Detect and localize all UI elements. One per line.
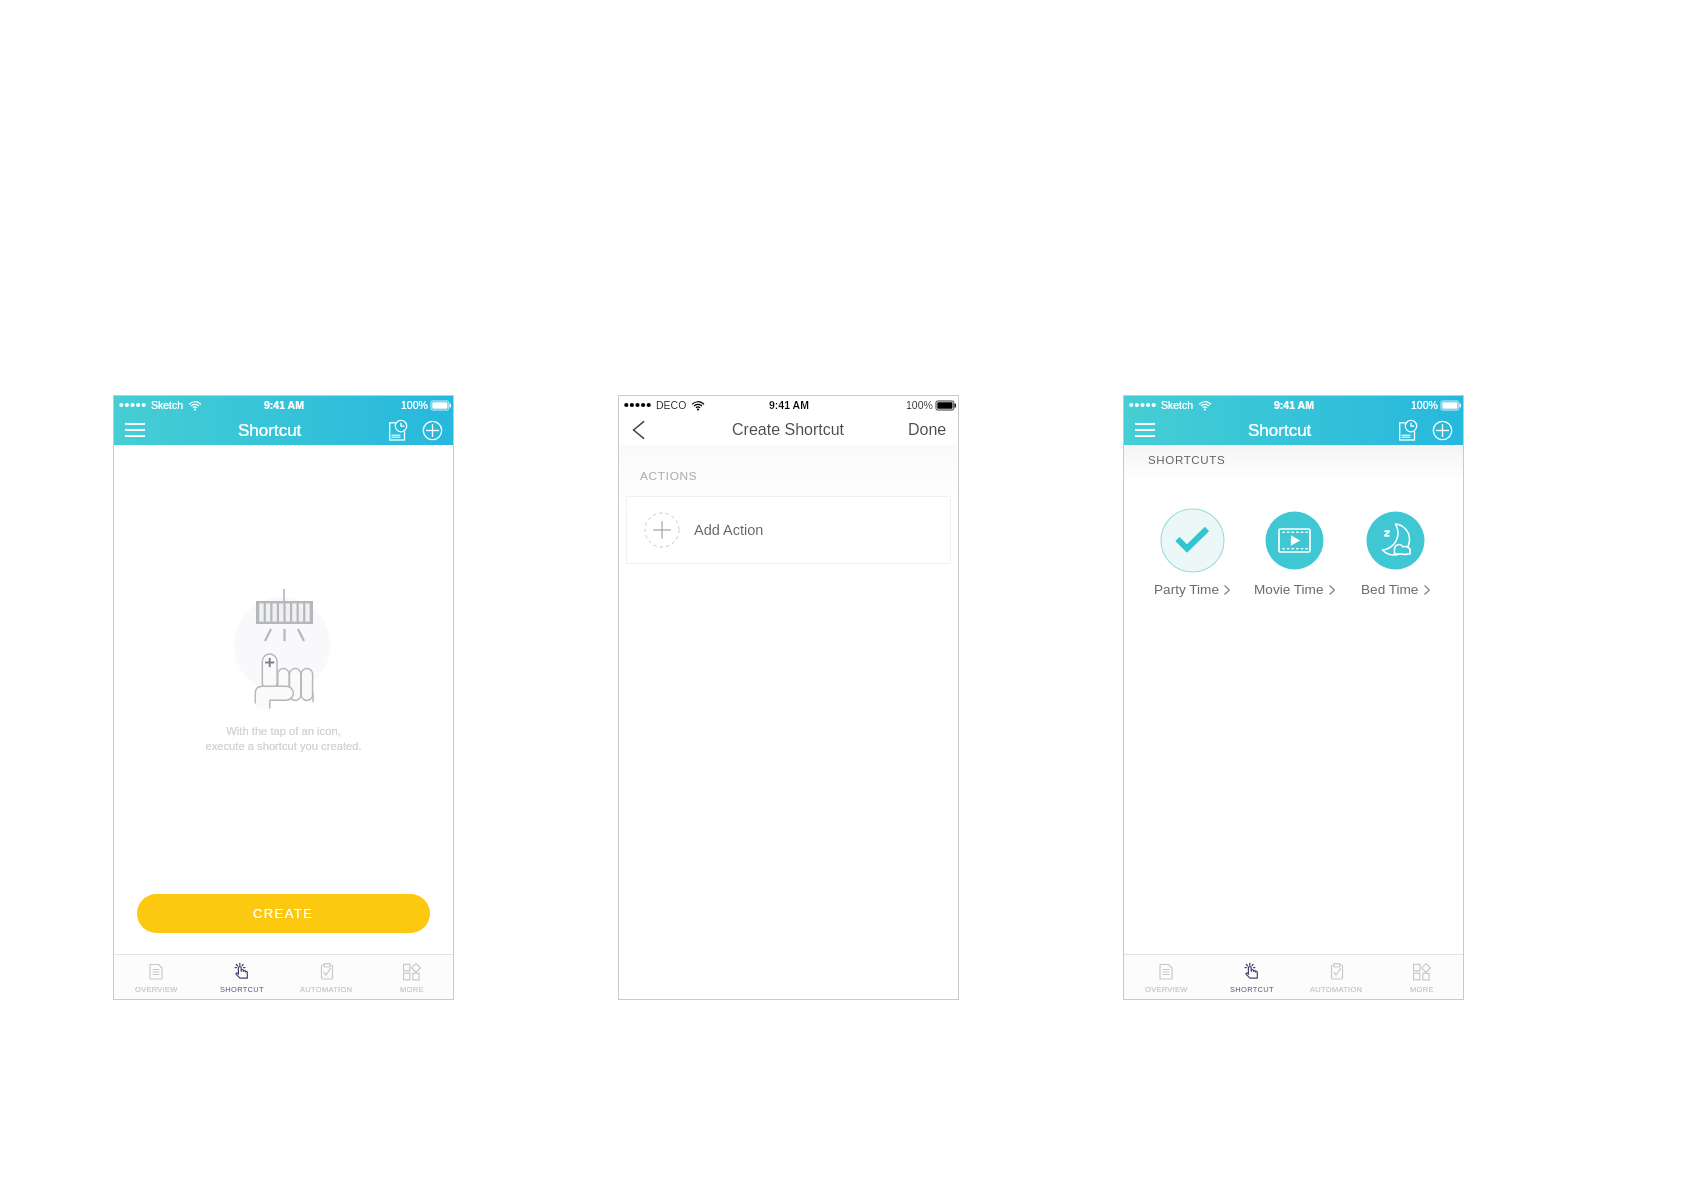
staticText: Add Action — [694, 522, 764, 538]
staticText: Done — [908, 421, 947, 439]
staticText: 100% — [401, 399, 428, 411]
button[interactable]: Bed Time — [1347, 508, 1443, 597]
staticText: MORE — [400, 985, 424, 993]
button[interactable]: Add — [412, 415, 452, 445]
staticText: OVERVIEW — [1145, 985, 1188, 993]
staticText: MORE — [1410, 985, 1434, 993]
staticText: 100% — [1411, 399, 1438, 411]
button[interactable]: Add Action — [626, 496, 951, 564]
staticText: 9:41 AM — [769, 399, 809, 411]
button[interactable]: CREATE — [137, 894, 430, 933]
staticText: DECO — [656, 399, 687, 411]
staticText: Shortcut — [1248, 421, 1312, 440]
button[interactable]: MORE — [369, 955, 454, 1000]
button[interactable]: SHORTCUT — [199, 955, 284, 1000]
staticText: Sketch — [151, 399, 184, 411]
button[interactable]: MORE — [1379, 955, 1464, 1000]
button[interactable]: History — [383, 415, 412, 445]
button[interactable]: Add — [1422, 415, 1462, 445]
button[interactable]: Party Time — [1144, 508, 1240, 597]
button[interactable]: Back — [618, 415, 658, 445]
staticText: Party Time — [1154, 582, 1219, 597]
staticText: ACTIONS — [640, 469, 698, 482]
staticText: SHORTCUTS — [1148, 453, 1226, 466]
button[interactable]: SHORTCUT — [1209, 955, 1294, 1000]
staticText: SHORTCUT — [220, 985, 264, 993]
staticText: With the tap of an icon, execute a short… — [205, 725, 362, 752]
button[interactable]: Done — [898, 415, 959, 445]
staticText: AUTOMATION — [300, 985, 353, 993]
staticText: AUTOMATION — [1310, 985, 1363, 993]
staticText: Bed Time — [1361, 582, 1419, 597]
staticText: 9:41 AM — [264, 399, 304, 411]
button[interactable]: Movie Time — [1246, 508, 1342, 597]
staticText: SHORTCUT — [1230, 985, 1274, 993]
button[interactable]: History — [1393, 415, 1422, 445]
staticText: OVERVIEW — [135, 985, 178, 993]
staticText: Movie Time — [1254, 582, 1324, 597]
staticText: Sketch — [1161, 399, 1194, 411]
staticText: 100% — [906, 399, 933, 411]
button[interactable]: Menu — [1123, 415, 1167, 445]
staticText: CREATE — [253, 906, 314, 921]
button[interactable]: OVERVIEW — [1123, 955, 1209, 1000]
button[interactable]: AUTOMATION — [1294, 955, 1379, 1000]
button[interactable]: AUTOMATION — [284, 955, 369, 1000]
staticText: Create Shortcut — [732, 421, 845, 439]
button[interactable]: OVERVIEW — [113, 955, 199, 1000]
staticText: Shortcut — [238, 421, 302, 440]
staticText: 9:41 AM — [1274, 399, 1314, 411]
button[interactable]: Menu — [113, 415, 157, 445]
